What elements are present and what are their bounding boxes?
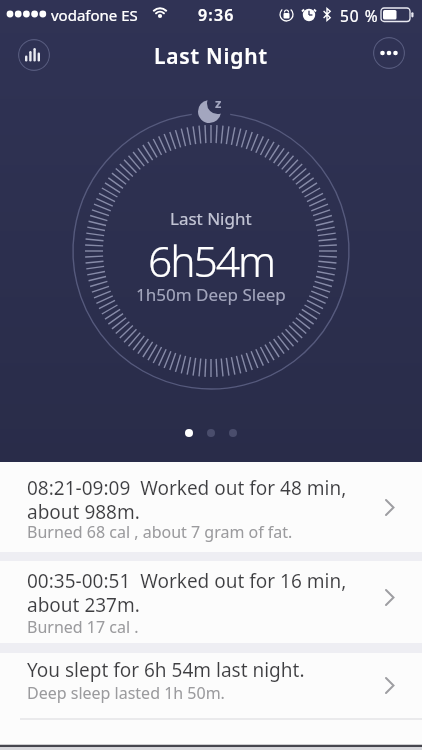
staticText: 9:36 [198, 4, 235, 26]
staticText: 6h54m [148, 232, 275, 290]
button[interactable] [373, 37, 405, 69]
staticText: z [215, 94, 222, 112]
button[interactable] [18, 39, 50, 71]
button[interactable]: 00:35-00:51 Worked out for 16 min, [0, 561, 422, 643]
staticText: Burned 17 cal . [27, 616, 139, 638]
button[interactable]: You slept for 6h 54m last night. [0, 653, 422, 750]
staticText: You slept for 6h 54m last night. [27, 657, 305, 683]
staticText: about 237m. [27, 592, 140, 618]
button[interactable]: 08:21-09:09 Worked out for 48 min, [0, 462, 422, 552]
staticText: 1h50m Deep Sleep [136, 283, 286, 306]
staticText: 50 % [340, 5, 379, 26]
staticText: 08:21-09:09 Worked out for 48 min, [27, 475, 347, 501]
staticText: Burned 68 cal , about 7 gram of fat. [27, 521, 293, 543]
staticText: Last Night [170, 207, 252, 230]
staticText: Last Night [154, 42, 268, 71]
staticText: vodafone ES [51, 5, 138, 25]
staticText: about 988m. [27, 499, 140, 525]
staticText: 00:35-00:51 Worked out for 16 min, [27, 568, 347, 594]
staticText: Deep sleep lasted 1h 50m. [27, 682, 225, 704]
